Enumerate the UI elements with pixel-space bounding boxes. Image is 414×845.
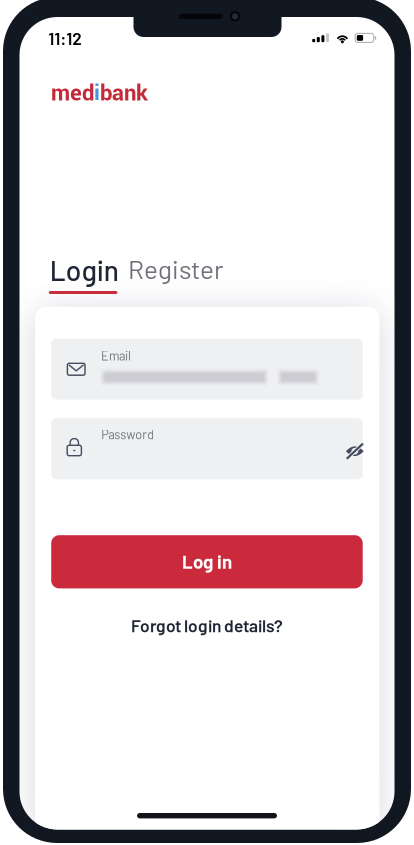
staticText: 11:12: [48, 28, 82, 48]
staticText: Login: [50, 253, 119, 286]
staticText: Register: [128, 253, 223, 284]
staticText: Forgot login details?: [131, 615, 283, 636]
button[interactable]: Email: [51, 339, 363, 400]
staticText: Password: [101, 427, 154, 442]
button[interactable]: Log in: [51, 535, 363, 588]
staticText: Email: [101, 348, 131, 363]
button[interactable]: Forgot login details?: [107, 608, 307, 642]
staticText: i: [94, 77, 100, 109]
button[interactable]: Register: [128, 253, 230, 291]
staticText: Log in: [182, 550, 232, 572]
staticText: med: [51, 77, 94, 109]
button[interactable]: Password: [51, 418, 363, 479]
staticText: bank: [100, 77, 148, 109]
button[interactable]: Login: [48, 253, 122, 303]
